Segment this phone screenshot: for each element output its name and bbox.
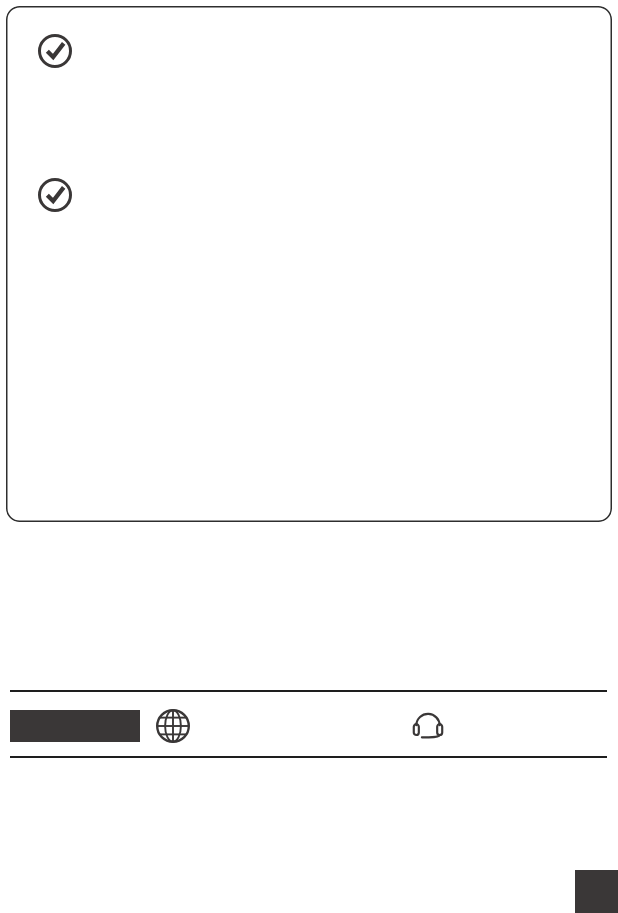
button[interactable] — [6, 6, 612, 522]
button[interactable]: Support — [410, 708, 446, 744]
button[interactable]: Language — [156, 709, 190, 743]
button[interactable]: Completed — [38, 178, 72, 212]
button[interactable]: Completed — [38, 34, 72, 68]
